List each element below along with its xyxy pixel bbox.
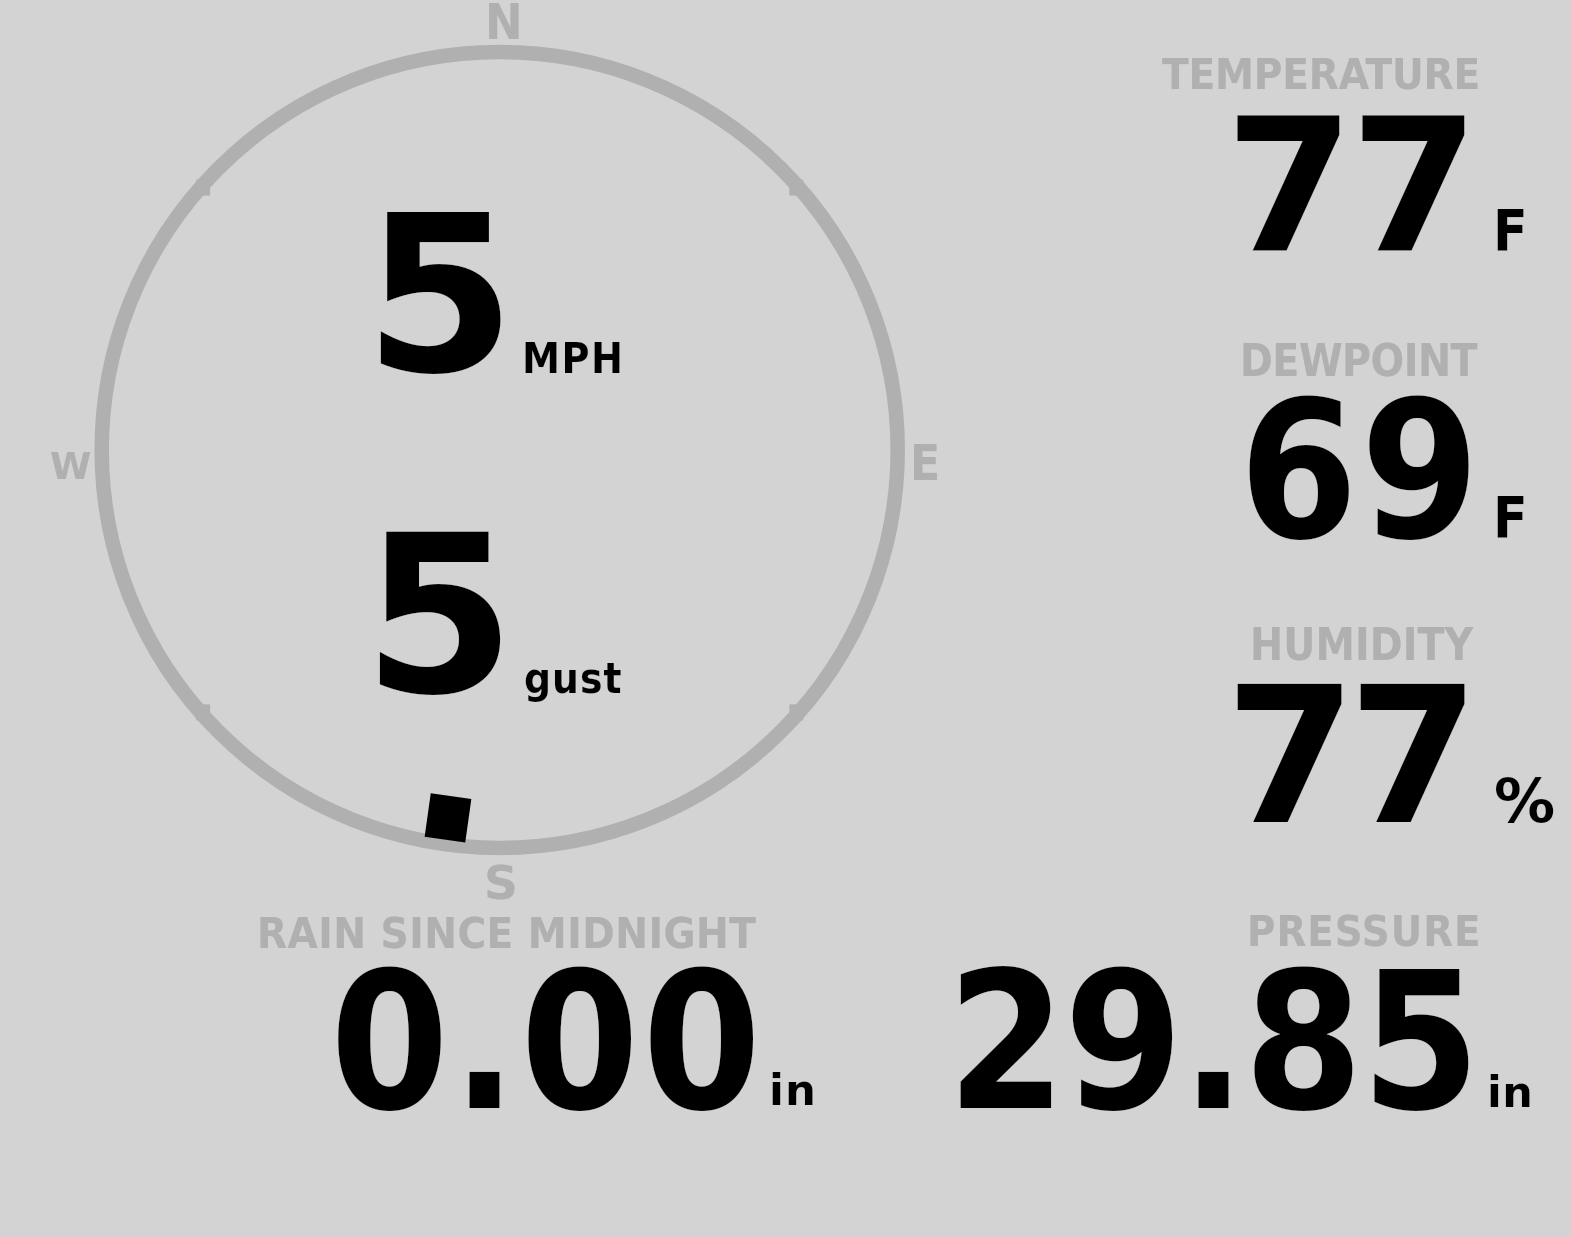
staticText: 0.00: [330, 932, 765, 1153]
staticText: 5: [363, 489, 516, 744]
button[interactable]: Dewpoint 69 degrees Fahrenheit: [1120, 300, 1571, 580]
staticText: HUMIDITY: [1250, 619, 1474, 670]
staticText: in: [1487, 1067, 1534, 1117]
staticText: F: [1493, 199, 1528, 265]
button[interactable]: Humidity 77 percent: [1120, 590, 1571, 870]
staticText: %: [1494, 765, 1556, 836]
staticText: 29.85: [947, 932, 1479, 1153]
staticText: 77: [1225, 647, 1472, 867]
staticText: RAIN SINCE MIDNIGHT: [257, 908, 757, 959]
staticText: S: [484, 855, 518, 910]
staticText: N: [485, 0, 523, 51]
button[interactable]: Temperature 77 degrees Fahrenheit: [1120, 20, 1571, 290]
staticText: PRESSURE: [1247, 906, 1482, 956]
staticText: 5: [364, 169, 516, 423]
staticText: TEMPERATURE: [1162, 49, 1480, 100]
staticText: E: [910, 435, 941, 492]
staticText: W: [50, 444, 92, 488]
button[interactable]: Pressure 29.85 inches of mercury: [900, 890, 1571, 1140]
staticText: MPH: [522, 334, 625, 383]
button[interactable]: Wind 5 miles per hour, gusting 5, from t…: [96, 46, 904, 854]
staticText: 77: [1225, 79, 1476, 295]
staticText: gust: [524, 654, 623, 703]
staticText: DEWPOINT: [1240, 335, 1478, 386]
staticText: in: [769, 1065, 818, 1116]
button[interactable]: Rain since midnight 0.00 inches: [200, 890, 880, 1140]
staticText: 69: [1239, 361, 1483, 582]
staticText: F: [1493, 486, 1528, 552]
